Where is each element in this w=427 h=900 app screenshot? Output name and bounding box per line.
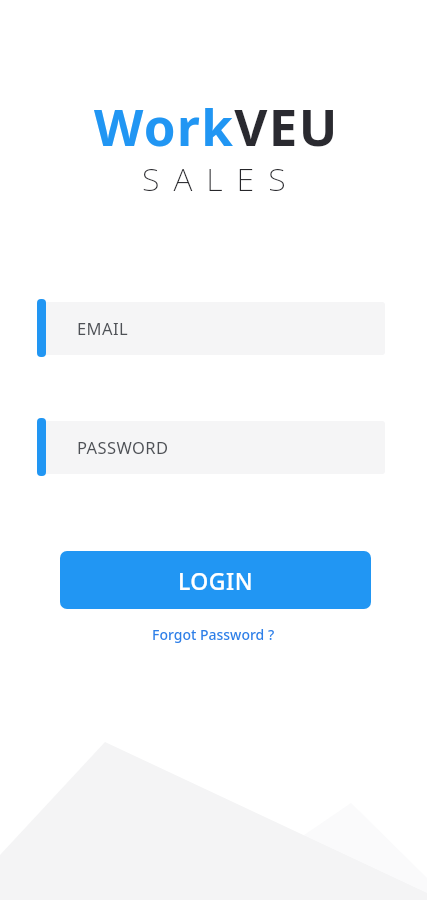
staticText: SALES <box>142 157 300 201</box>
button[interactable]: Forgot Password ? <box>152 625 275 644</box>
staticText: EMAIL <box>77 317 128 339</box>
button[interactable]: EMAIL <box>37 299 385 357</box>
staticText: PASSWORD <box>77 436 169 458</box>
staticText: WorkVEU <box>94 91 339 160</box>
button[interactable]: PASSWORD <box>37 418 385 476</box>
button[interactable]: LOGIN <box>60 551 371 609</box>
staticText: LOGIN <box>178 565 254 596</box>
